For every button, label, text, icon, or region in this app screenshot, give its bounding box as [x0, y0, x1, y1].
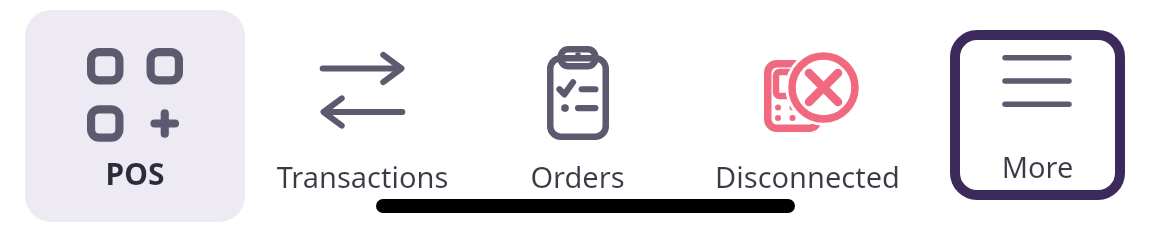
staticText: Orders	[480, 157, 675, 196]
button[interactable]: Disconnected	[685, 10, 930, 222]
button[interactable]: Transactions	[255, 10, 470, 222]
button[interactable]: Orders	[480, 10, 675, 222]
staticText: More	[950, 147, 1125, 186]
staticText: Transactions	[255, 157, 470, 196]
button[interactable]: More	[950, 30, 1125, 200]
staticText: Disconnected	[685, 157, 930, 196]
staticText: POS	[25, 153, 245, 194]
button[interactable]: POS	[25, 10, 245, 222]
